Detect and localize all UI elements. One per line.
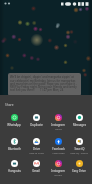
button[interactable]: Hangouts <box>3 160 25 177</box>
staticText: Hangouts <box>8 169 21 173</box>
staticText: We'll be chippin', dippin' and margarita… <box>10 75 79 92</box>
staticText: Save tQ - Status <box>70 151 88 154</box>
staticText: WhatsApp <box>7 123 21 127</box>
button[interactable]: Save tQ <box>68 138 90 155</box>
staticText: News Feed <box>52 151 65 154</box>
staticText: Instagram <box>51 123 65 127</box>
button[interactable]: Gmail <box>25 160 47 177</box>
button[interactable]: Bluetooth <box>3 138 25 155</box>
button[interactable]: Messages <box>68 114 90 131</box>
staticText: Messages <box>73 123 86 127</box>
staticText: Gmail <box>32 169 40 173</box>
staticText: Direct <box>55 127 62 130</box>
staticText: Share <box>5 103 14 107</box>
button[interactable]: Duplicate <box>25 114 47 131</box>
staticText: Save tQ <box>74 147 85 151</box>
button[interactable]: Facebook <box>47 138 69 155</box>
staticText: Stories <box>54 173 62 176</box>
staticText: Easy Drive <box>72 169 86 173</box>
staticText: Duplicate <box>30 123 43 127</box>
staticText: Facebook <box>52 147 65 151</box>
staticText: Bluetooth <box>8 147 21 151</box>
button[interactable]: Drive <box>25 138 47 155</box>
button[interactable]: Instagram <box>47 114 69 131</box>
staticText: Save to Drive <box>29 151 44 154</box>
staticText: Drive <box>33 147 40 151</box>
button[interactable]: Easy Drive <box>68 160 90 177</box>
button[interactable]: Instagram <box>47 160 69 177</box>
staticText: Instagram <box>51 169 65 173</box>
button[interactable]: WhatsApp <box>3 114 25 131</box>
